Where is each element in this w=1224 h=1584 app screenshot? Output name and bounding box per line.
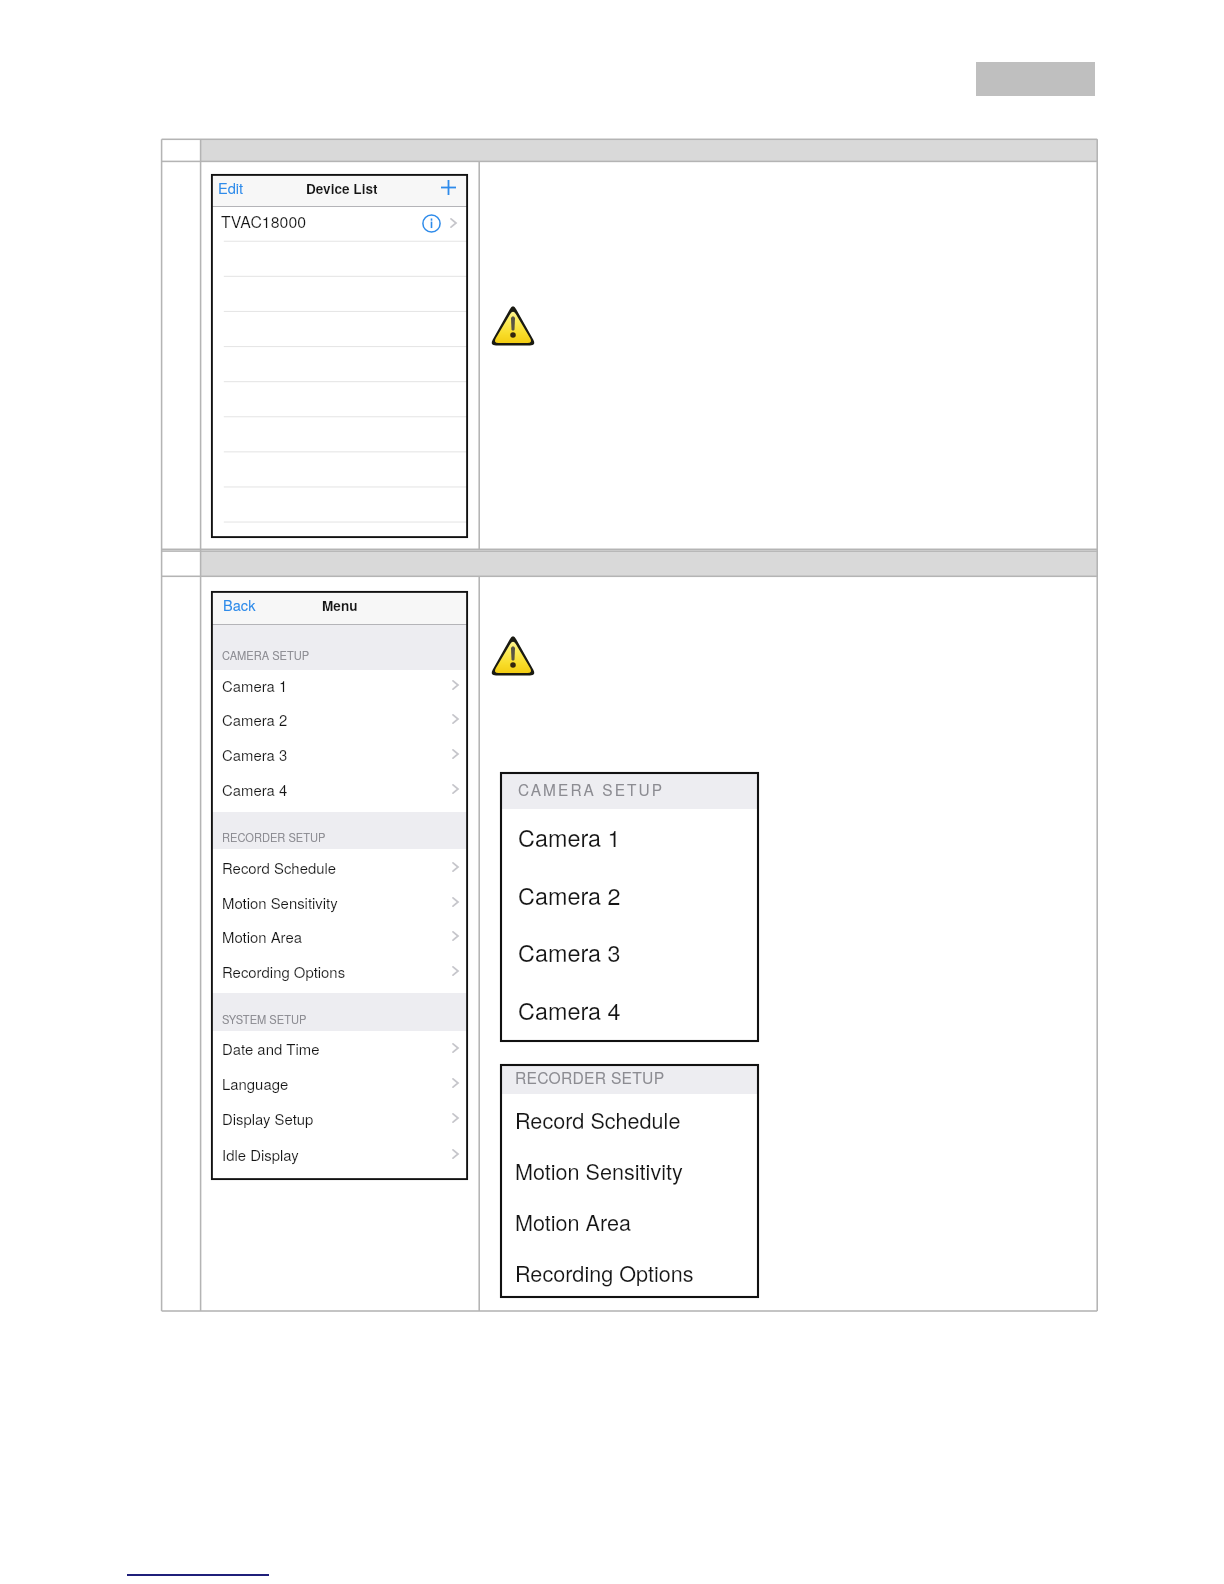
staticText: Edit	[218, 177, 244, 198]
staticText: Camera 3	[518, 935, 621, 969]
button[interactable]: Back	[214, 592, 255, 623]
button[interactable]: Camera 1	[500, 810, 759, 868]
staticText: Camera 2	[222, 709, 288, 730]
button[interactable]: Recording Options	[211, 955, 468, 990]
other: Warning	[489, 303, 537, 346]
staticText: RECORDER SETUP	[222, 829, 326, 845]
button[interactable]: Display Setup	[211, 1102, 468, 1137]
staticText: Motion Sensitivity	[515, 1155, 683, 1186]
staticText: Camera 4	[222, 779, 288, 800]
staticText: Idle Display	[222, 1144, 299, 1165]
staticText: Camera 1	[222, 675, 288, 696]
other: Warning	[489, 633, 537, 676]
staticText: Camera 4	[518, 993, 621, 1027]
button[interactable]: Camera 1	[211, 669, 468, 704]
staticText: Device List	[306, 179, 378, 198]
button[interactable]: Camera 3	[500, 925, 759, 983]
button[interactable]: Language	[211, 1067, 468, 1102]
button[interactable]: Motion Sensitivity	[500, 1146, 759, 1197]
button[interactable]: Add device	[441, 180, 456, 195]
staticText: Camera 1	[518, 820, 621, 854]
staticText: Display Setup	[222, 1108, 314, 1129]
staticText: SYSTEM SETUP	[222, 1011, 307, 1027]
button[interactable]: Date and Time	[211, 1032, 468, 1067]
staticText: Record Schedule	[222, 857, 337, 878]
button[interactable]: Recording Options	[500, 1248, 759, 1299]
staticText: CAMERA SETUP	[222, 647, 310, 663]
staticText: TVAC18000	[221, 210, 307, 233]
staticText: Motion Area	[515, 1206, 631, 1237]
staticText: Language	[222, 1073, 289, 1094]
staticText: Menu	[322, 596, 358, 615]
staticText: Back	[223, 594, 256, 615]
button[interactable]: Edit	[214, 175, 248, 205]
button[interactable]: Idle Display	[211, 1138, 468, 1173]
button[interactable]: Camera 2	[500, 868, 759, 926]
staticText: CAMERA SETUP	[518, 778, 665, 800]
button[interactable]: Device info	[422, 214, 441, 233]
staticText: Camera 2	[518, 878, 621, 912]
button[interactable]: Motion Area	[500, 1197, 759, 1248]
button[interactable]: Motion Sensitivity	[211, 886, 468, 921]
button[interactable]: Camera 2	[211, 703, 468, 738]
button[interactable]: TVAC18000	[211, 207, 468, 241]
staticText: Motion Area	[222, 926, 302, 947]
button[interactable]: Camera 4	[211, 773, 468, 808]
staticText: Recording Options	[222, 961, 346, 982]
button[interactable]: Record Schedule	[500, 1095, 759, 1146]
button[interactable]: Record Schedule	[211, 851, 468, 886]
button[interactable]: Camera 3	[211, 738, 468, 773]
staticText: Camera 3	[222, 744, 288, 765]
button[interactable]: Motion Area	[211, 920, 468, 955]
staticText: Date and Time	[222, 1038, 320, 1059]
staticText: Recording Options	[515, 1257, 694, 1288]
staticText: Record Schedule	[515, 1104, 681, 1135]
button[interactable]: Camera 4	[500, 983, 759, 1041]
staticText: RECORDER SETUP	[515, 1066, 665, 1088]
staticText: Motion Sensitivity	[222, 892, 338, 913]
